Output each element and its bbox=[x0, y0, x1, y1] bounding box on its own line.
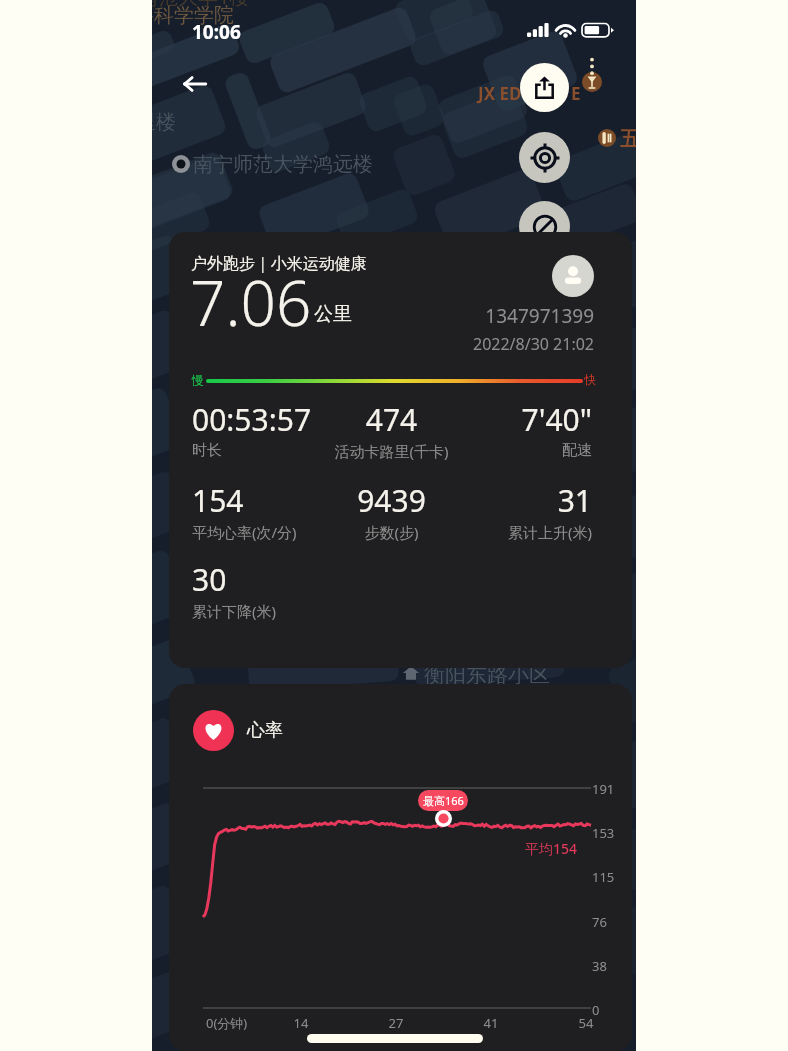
staticText: 南宁师范大学鸿远楼 bbox=[193, 152, 373, 177]
staticText: 115 bbox=[592, 868, 615, 886]
staticText: 时长 bbox=[192, 441, 325, 460]
button[interactable]: Share bbox=[520, 63, 569, 112]
button[interactable]: 户外跑步｜小米运动健康 bbox=[169, 232, 632, 668]
staticText: 27 bbox=[376, 1014, 416, 1032]
button[interactable]: Back bbox=[170, 59, 220, 109]
staticText: 平均心率(次/分) bbox=[192, 522, 325, 542]
staticText: 步数(步) bbox=[325, 522, 458, 542]
staticText: 10:06 bbox=[192, 19, 241, 45]
staticText: 38 bbox=[592, 957, 607, 975]
staticText: 心率 bbox=[247, 719, 283, 742]
staticText: 慢 bbox=[192, 372, 204, 387]
staticText: 30 bbox=[192, 559, 325, 600]
staticText: 7.06 bbox=[190, 260, 312, 344]
staticText: 14 bbox=[281, 1014, 321, 1032]
staticText: 快 bbox=[584, 372, 596, 387]
staticText: 76 bbox=[592, 913, 607, 931]
button[interactable]: My location bbox=[519, 132, 570, 183]
staticText: 00:53:57 bbox=[192, 399, 325, 440]
staticText: 7'40" bbox=[459, 399, 592, 440]
staticText: 累计上升(米) bbox=[459, 522, 592, 542]
staticText: 衡阳东路小区 bbox=[424, 662, 550, 688]
staticText: 2022/8/30 21:02 bbox=[349, 333, 594, 355]
staticText: 154 bbox=[192, 480, 325, 521]
staticText: 153 bbox=[592, 824, 615, 842]
staticText: E bbox=[571, 82, 581, 105]
staticText: 活动卡路里(千卡) bbox=[325, 441, 458, 461]
staticText: 31 bbox=[459, 480, 592, 521]
staticText: 累计下降(米) bbox=[192, 601, 325, 621]
button[interactable]: Hide track bbox=[519, 201, 570, 252]
staticText: 191 bbox=[592, 780, 615, 798]
button[interactable]: 心率 bbox=[169, 684, 632, 1051]
staticText: 五 bbox=[620, 127, 636, 152]
staticText: 41 bbox=[471, 1014, 511, 1032]
staticText: 474 bbox=[325, 399, 458, 440]
staticText: 南范大学1楼 bbox=[152, 0, 250, 10]
staticText: 科科学学院 bbox=[152, 3, 234, 28]
staticText: JX ED bbox=[478, 82, 522, 105]
staticText: 9439 bbox=[325, 480, 458, 521]
staticText: 里楼 bbox=[152, 110, 176, 135]
staticText: 54 bbox=[566, 1014, 606, 1032]
staticText: 0(分钟) bbox=[206, 1014, 248, 1032]
staticText: 最高166 bbox=[423, 793, 464, 808]
staticText: 1347971399 bbox=[349, 303, 594, 329]
staticText: 配速 bbox=[459, 441, 592, 460]
staticText: 0 bbox=[592, 1001, 600, 1019]
staticText: 平均154 bbox=[525, 839, 578, 858]
staticText: 公里 bbox=[314, 302, 352, 326]
staticText: 户外跑步｜小米运动健康 bbox=[191, 254, 367, 274]
